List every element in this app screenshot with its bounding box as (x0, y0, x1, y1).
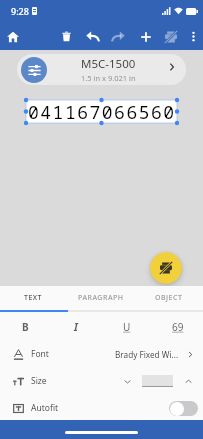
button[interactable]: Bold (0, 315, 50, 339)
staticText: OBJECT (155, 293, 183, 303)
button[interactable]: Autofit toggle (169, 401, 198, 416)
button[interactable]: Decrease size (120, 374, 134, 388)
staticText: Autofit (31, 402, 59, 414)
button[interactable]: Size (0, 366, 203, 393)
staticText: I (74, 320, 78, 334)
staticText: Font (31, 348, 49, 360)
staticText: PARAGRAPH (78, 293, 124, 303)
button[interactable]: Redo (109, 27, 128, 46)
staticText: 69 (172, 320, 184, 334)
staticText: M5C-1500 (81, 56, 136, 72)
staticText: 1.5 in x 9.021 in (81, 73, 136, 83)
button[interactable]: Increase size (181, 374, 195, 388)
staticText: Size (31, 375, 47, 387)
staticText: 9:28 (11, 5, 29, 17)
staticText: Brady Fixed Wi... (115, 349, 179, 360)
staticText: B (22, 320, 29, 334)
button[interactable]: TEXT (0, 286, 67, 310)
staticText: U (123, 320, 131, 334)
button[interactable]: OBJECT (135, 286, 203, 310)
button[interactable]: Autofit (0, 393, 203, 420)
staticText: 041167066560 (28, 100, 176, 123)
button[interactable]: M5C-1500 (17, 54, 186, 85)
button[interactable]: Home (3, 27, 22, 46)
button[interactable]: Print disabled (161, 27, 180, 46)
button[interactable]: Italic (50, 315, 101, 339)
button[interactable]: Reverse (152, 315, 203, 339)
button[interactable]: PARAGRAPH (67, 286, 135, 310)
button[interactable]: Add (136, 27, 155, 46)
button[interactable]: Underline (101, 315, 152, 339)
button[interactable]: More options (184, 27, 203, 46)
button[interactable]: Font (0, 339, 203, 366)
staticText: TEXT (24, 293, 43, 303)
button[interactable]: Delete (57, 27, 76, 46)
button[interactable]: Undo (83, 27, 102, 46)
button[interactable]: Printing disabled (150, 252, 182, 284)
button[interactable]: 041167066560 (26, 100, 177, 123)
